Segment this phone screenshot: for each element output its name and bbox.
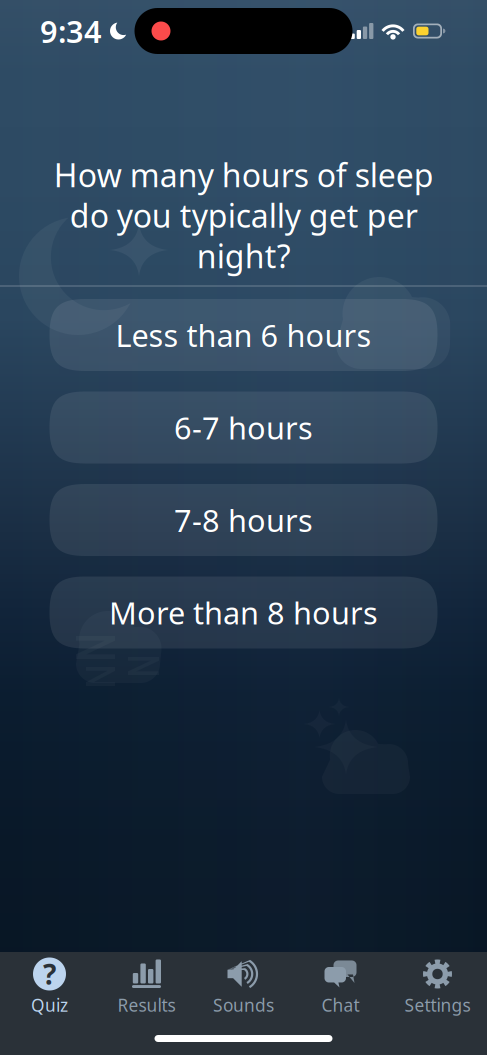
staticText: How many hours of sleep do you typically… xyxy=(53,153,433,277)
staticText: 6-7 hours xyxy=(174,407,313,448)
staticText: ? xyxy=(43,955,56,993)
button[interactable]: ? xyxy=(1,956,98,1018)
staticText: Quiz xyxy=(31,993,68,1016)
staticText: Results xyxy=(117,993,175,1016)
staticText: 9:34 xyxy=(40,11,102,51)
button[interactable]: Results xyxy=(98,956,195,1018)
button[interactable]: 6-7 hours xyxy=(49,391,437,463)
button[interactable]: 7-8 hours xyxy=(49,484,437,556)
staticText: Chat xyxy=(321,993,359,1016)
staticText: Less than 6 hours xyxy=(115,315,371,355)
button[interactable]: Settings xyxy=(389,956,486,1018)
staticText: 7-8 hours xyxy=(174,500,313,540)
staticText: Settings xyxy=(404,993,470,1016)
staticText: More than 8 hours xyxy=(109,592,378,633)
button[interactable]: Less than 6 hours xyxy=(49,299,437,371)
button[interactable]: Sounds xyxy=(195,956,292,1018)
button[interactable]: Chat xyxy=(292,956,389,1018)
button[interactable]: More than 8 hours xyxy=(49,576,437,648)
staticText: Sounds xyxy=(213,993,274,1016)
